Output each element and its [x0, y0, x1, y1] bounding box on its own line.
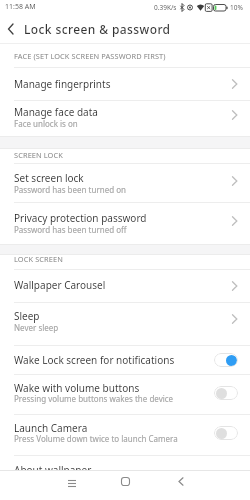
button[interactable]	[111, 470, 139, 500]
staticText: Lock screen & password	[24, 21, 171, 37]
staticText: About wallpaper	[14, 463, 92, 477]
button[interactable]	[7, 23, 15, 35]
staticText: 11:58 AM	[5, 2, 36, 12]
staticText: Never sleep	[14, 322, 59, 333]
button[interactable]	[0, 415, 250, 455]
staticText: Pressing volume buttons wakes the device	[14, 393, 174, 404]
button[interactable]	[0, 456, 250, 470]
staticText: Manage fingerprints	[14, 77, 111, 91]
button[interactable]	[214, 426, 238, 440]
staticText: 0.39K/s	[154, 3, 177, 12]
staticText: Privacy protection password	[14, 211, 147, 225]
staticText: FACE (SET LOCK SCREEN PASSWORD FIRST)	[14, 51, 166, 61]
button[interactable]	[0, 164, 250, 202]
button[interactable]	[0, 270, 250, 302]
button[interactable]	[214, 386, 238, 400]
staticText: Wallpaper Carousel	[14, 278, 106, 292]
button[interactable]	[0, 101, 250, 135]
button[interactable]	[0, 68, 250, 100]
button[interactable]	[167, 470, 195, 500]
staticText: Face unlock is on	[14, 118, 78, 129]
button[interactable]	[0, 375, 250, 414]
staticText: Wake with volume buttons	[14, 381, 140, 395]
staticText: SCREEN LOCK	[14, 150, 63, 160]
staticText: Password has been turned on	[14, 184, 126, 195]
staticText: Wake Lock screen for notifications	[14, 353, 175, 367]
button[interactable]	[58, 470, 86, 500]
button[interactable]	[214, 353, 238, 367]
staticText: Password has been turned off	[14, 224, 127, 235]
button[interactable]	[0, 346, 250, 374]
staticText: Manage face data	[14, 105, 98, 119]
staticText: Press Volume down twice to launch Camera	[14, 433, 178, 444]
staticText: LOCK SCREEN	[14, 254, 63, 264]
button[interactable]	[0, 303, 250, 345]
staticText: Set screen lock	[14, 171, 84, 185]
staticText: 10%	[230, 3, 243, 12]
staticText: Launch Camera	[14, 421, 88, 435]
staticText: Sleep	[14, 309, 40, 323]
button[interactable]	[0, 203, 250, 243]
